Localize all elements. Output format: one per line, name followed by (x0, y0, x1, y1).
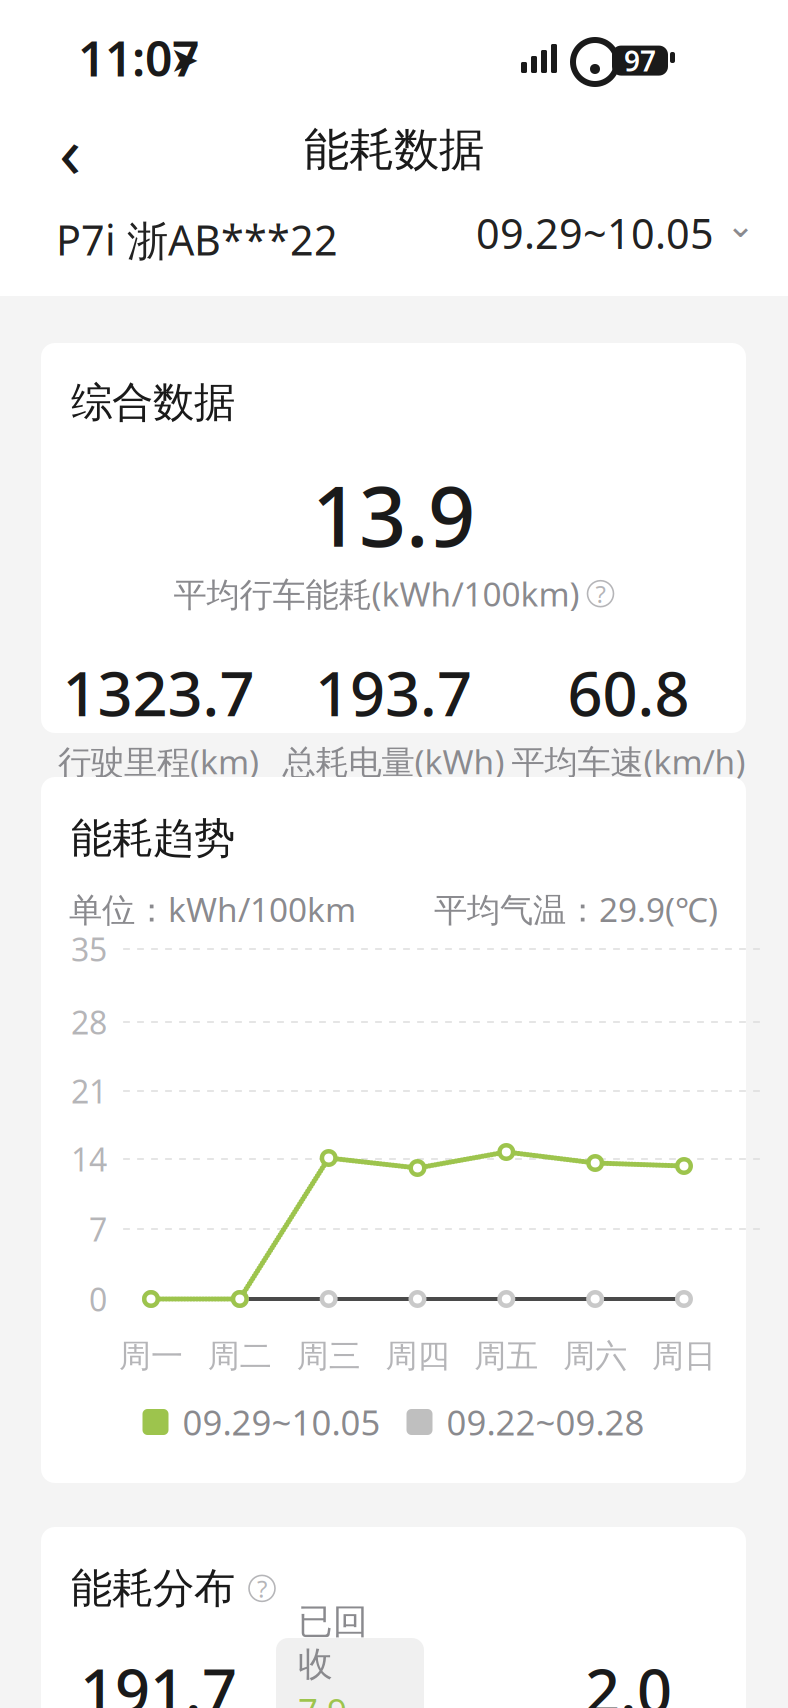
staticText: 0 (89, 1278, 107, 1320)
staticText: 综合数据 (71, 377, 235, 428)
staticText: 193.7 (315, 652, 472, 733)
staticText: 35 (71, 928, 107, 970)
staticText: 7 (89, 1208, 107, 1250)
staticText: 总耗电量(kWh) (282, 739, 504, 784)
staticText: 周六 (563, 1336, 627, 1376)
staticText: 周二 (208, 1336, 272, 1376)
staticText: 已回收 (298, 1600, 368, 1686)
staticText: 能耗数据 (304, 122, 484, 178)
staticText: 13.9 (312, 460, 475, 570)
staticText: 60.8 (567, 652, 689, 733)
staticText: 行驶里程(km) (58, 739, 259, 784)
staticText: 能耗分布 (71, 1563, 235, 1614)
staticText: 09.29~10.05 (182, 1399, 380, 1445)
staticText: ? (595, 578, 605, 610)
staticText: P7i 浙AB***22 (56, 212, 338, 267)
staticText: 21 (71, 1070, 107, 1112)
button[interactable]: 09.29~10.05 (470, 205, 761, 261)
staticText: ‹ (59, 102, 81, 198)
staticText: 7.9 kWh (298, 1687, 370, 1708)
staticText: ➤ (170, 40, 199, 79)
staticText: 2.0 (585, 1649, 672, 1708)
staticText: 09.22~09.28 (446, 1399, 644, 1445)
staticText: 09.29~10.05 (476, 206, 714, 260)
staticText: 能耗趋势 (71, 813, 235, 864)
staticText: 191.7 (80, 1649, 237, 1708)
staticText: 平均气温：29.9(℃) (434, 887, 718, 931)
staticText: 97 (624, 42, 656, 79)
staticText: 周四 (385, 1336, 449, 1376)
staticText: 周日 (652, 1336, 716, 1376)
staticText: 单位：kWh/100km (69, 887, 356, 931)
staticText: 平均行车能耗(kWh/100km) (173, 571, 579, 616)
staticText: 14 (71, 1138, 107, 1180)
staticText: 周一 (119, 1336, 183, 1376)
button[interactable]: 返回 (30, 110, 110, 190)
staticText: 28 (71, 1001, 107, 1043)
staticText: ⌄ (726, 205, 755, 245)
staticText: 1323.7 (62, 652, 254, 733)
staticText: 11:07 (78, 26, 199, 90)
staticText: ? (257, 1572, 267, 1604)
staticText: 周五 (474, 1336, 538, 1376)
staticText: 周三 (297, 1336, 361, 1376)
staticText: 平均车速(km/h) (511, 739, 745, 784)
